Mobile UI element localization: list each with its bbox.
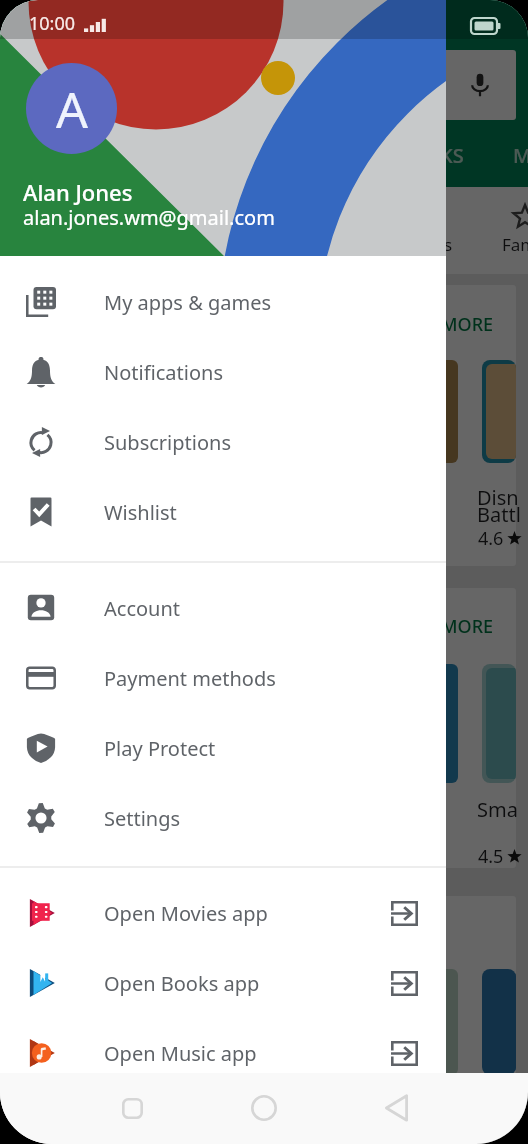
button[interactable]: Back [374, 1086, 418, 1130]
button[interactable]: Voice search [330, 50, 516, 120]
button[interactable]: Subscriptions [0, 407, 446, 477]
staticText: Battl [477, 501, 521, 528]
staticText: Account [104, 595, 181, 622]
button[interactable]: Notifications [0, 337, 446, 407]
staticText: KS [440, 142, 464, 169]
staticText: Alan Jones [23, 177, 133, 207]
button[interactable]: Play Protect [0, 713, 446, 783]
staticText: Open Music app [104, 1040, 257, 1067]
staticText: Open Books app [104, 970, 260, 997]
button[interactable]: Recent apps [110, 1086, 154, 1130]
button[interactable]: Payment methods [0, 643, 446, 713]
staticText: A [56, 75, 88, 143]
staticText: Play Protect [104, 735, 216, 762]
staticText: Fam [502, 233, 528, 256]
staticText: Disn [477, 484, 519, 511]
button[interactable]: Settings [0, 783, 446, 853]
button[interactable]: Account [0, 573, 446, 643]
staticText: 10:00 [29, 11, 76, 36]
staticText: alan.jones.wm@gmail.com [23, 204, 275, 231]
staticText: Settings [104, 805, 181, 832]
staticText: 4.5 [478, 844, 504, 869]
button[interactable]: Open Movies app [0, 878, 446, 948]
button[interactable]: Open Books app [0, 948, 446, 1018]
staticText: MORE [441, 614, 494, 639]
staticText: M [513, 142, 528, 169]
staticText: Open Movies app [104, 900, 268, 927]
staticText: 4.6 [478, 526, 504, 551]
button[interactable]: Open Music app [0, 1018, 446, 1088]
staticText: Payment methods [104, 665, 276, 692]
button[interactable]: My apps & games [0, 267, 446, 337]
staticText: MORE [441, 312, 494, 337]
button[interactable]: Wishlist [0, 477, 446, 547]
button[interactable]: Account avatar [26, 63, 117, 154]
button[interactable]: Home [242, 1086, 286, 1130]
staticText: Notifications [104, 359, 223, 386]
staticText: Sma [477, 796, 518, 823]
staticText: Wishlist [104, 499, 177, 526]
staticText: s [444, 233, 453, 256]
staticText: Subscriptions [104, 429, 231, 456]
staticText: My apps & games [104, 289, 272, 316]
